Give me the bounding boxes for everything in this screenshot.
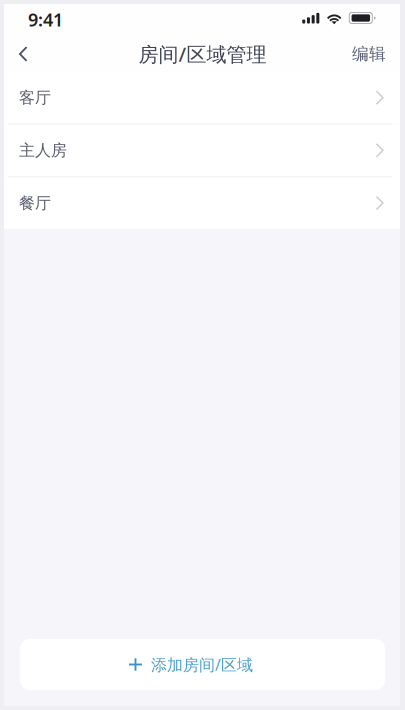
staticText: 添加房间/区域 [151, 654, 253, 675]
staticText: 客厅 [19, 88, 51, 108]
button[interactable]: 编辑 [352, 36, 405, 72]
staticText: 主人房 [19, 140, 67, 160]
button[interactable]: 添加房间/区域 [20, 639, 385, 690]
button[interactable]: 餐厅 [0, 177, 405, 229]
button[interactable]: 主人房 [0, 125, 405, 176]
button[interactable]: 客厅 [0, 72, 405, 123]
button[interactable]: 返回 [0, 36, 53, 72]
staticText: 编辑 [352, 43, 386, 64]
staticText: 餐厅 [19, 193, 51, 213]
staticText: 房间/区域管理 [138, 40, 266, 68]
staticText: 9:41 [28, 7, 63, 32]
